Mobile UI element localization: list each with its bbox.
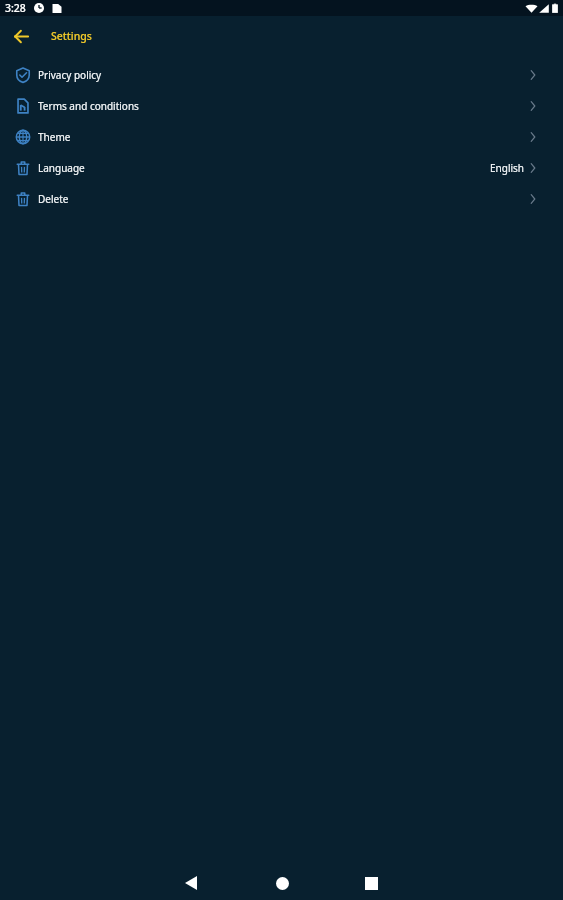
staticText: Terms and conditions <box>38 99 139 113</box>
staticText: Theme <box>38 130 71 144</box>
button[interactable]: Delete <box>0 183 563 214</box>
button[interactable]: System back <box>178 870 204 896</box>
button[interactable]: Language <box>0 152 563 183</box>
staticText: Delete <box>38 192 69 206</box>
staticText: Settings <box>51 29 92 43</box>
button[interactable]: Theme <box>0 121 563 152</box>
staticText: Language <box>38 161 85 175</box>
staticText: English <box>490 161 525 175</box>
button[interactable]: Home <box>269 870 295 896</box>
staticText: Privacy policy <box>38 68 102 82</box>
button[interactable]: Privacy policy <box>0 59 563 90</box>
button[interactable]: Recents <box>358 870 384 896</box>
button[interactable]: Back <box>5 20 37 52</box>
button[interactable]: Terms and conditions <box>0 90 563 121</box>
staticText: 3:28 <box>5 1 26 15</box>
